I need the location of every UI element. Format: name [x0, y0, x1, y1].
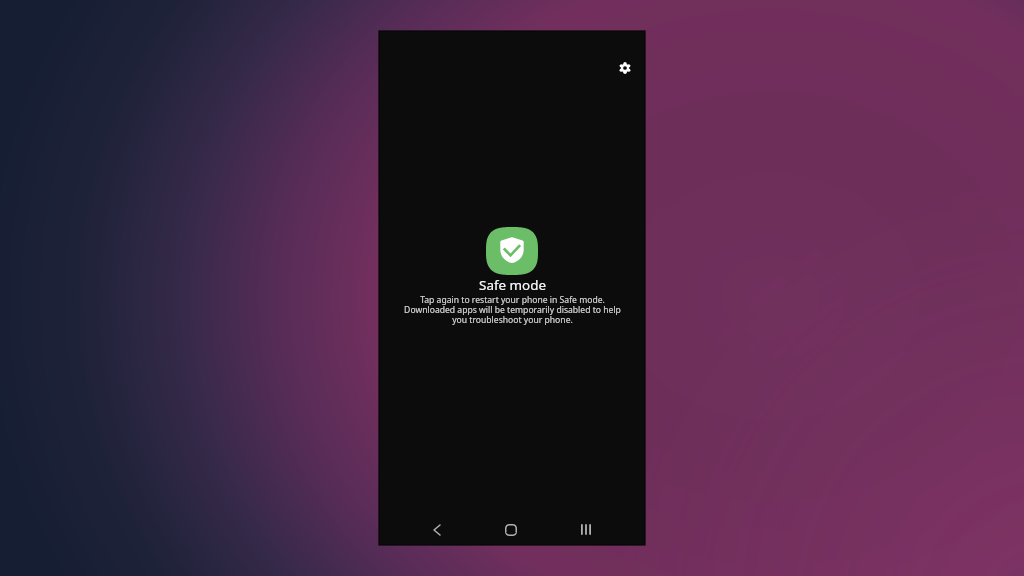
staticText: Tap again to restart your phone in Safe …	[404, 294, 621, 325]
button[interactable]: Settings	[611, 54, 639, 82]
button[interactable]: Back	[415, 514, 459, 545]
button[interactable]: Safe mode	[486, 227, 538, 275]
button[interactable]: Recent apps	[563, 514, 608, 545]
staticText: Safe mode	[479, 276, 546, 294]
button[interactable]: Home	[489, 514, 533, 545]
